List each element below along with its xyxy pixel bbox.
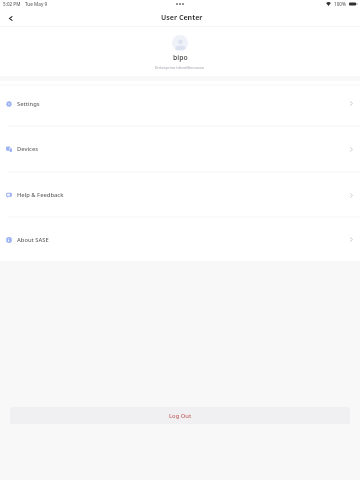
staticText: About SASE: [17, 236, 49, 244]
button[interactable]: About SASE: [0, 218, 360, 261]
staticText: Help & Feedback: [17, 191, 64, 199]
staticText: User Center: [161, 13, 203, 23]
staticText: Settings: [17, 100, 40, 108]
button[interactable]: Settings: [0, 81, 360, 126]
button[interactable]: Devices: [0, 126, 360, 172]
staticText: bipo: [173, 53, 188, 62]
staticText: Enterprise identifier:sase: [155, 65, 205, 71]
staticText: Tue May 9: [25, 1, 48, 7]
button[interactable]: Back: [0, 11, 20, 27]
staticText: Devices: [17, 145, 39, 153]
button[interactable]: Help & Feedback: [0, 172, 360, 218]
staticText: 5:02 PM: [3, 1, 21, 7]
button[interactable]: Log Out: [10, 407, 350, 424]
staticText: Log Out: [169, 412, 192, 420]
staticText: 100%: [334, 1, 346, 7]
